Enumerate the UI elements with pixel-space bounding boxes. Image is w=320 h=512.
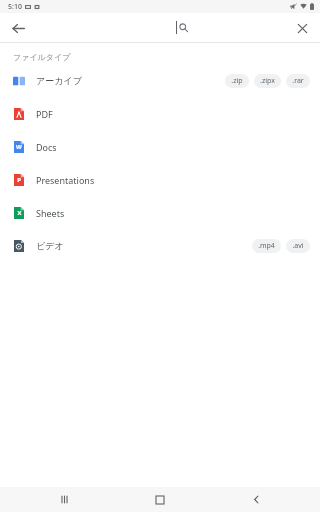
- staticText: P: [17, 176, 21, 184]
- staticText: Presentations: [36, 174, 95, 186]
- staticText: Docs: [36, 141, 57, 153]
- button[interactable]: Back: [242, 487, 270, 512]
- staticText: X: [17, 209, 22, 217]
- button[interactable]: アーカイブ: [0, 64, 320, 97]
- button[interactable]: .zip: [225, 74, 249, 88]
- button[interactable]: .rar: [286, 74, 310, 88]
- button[interactable]: X: [0, 196, 320, 229]
- button[interactable]: Home: [146, 487, 174, 512]
- staticText: .avi: [292, 241, 304, 251]
- staticText: ビデオ: [36, 240, 64, 251]
- staticText: .zipx: [260, 76, 275, 86]
- staticText: ファイルタイプ: [13, 52, 71, 62]
- button[interactable]: Recents: [50, 487, 78, 512]
- button[interactable]: .zipx: [254, 74, 281, 88]
- staticText: .zip: [231, 76, 243, 86]
- staticText: アーカイブ: [36, 75, 82, 86]
- staticText: PDF: [36, 108, 53, 120]
- button[interactable]: Back: [4, 14, 32, 42]
- button[interactable]: P: [0, 163, 320, 196]
- staticText: .rar: [292, 76, 304, 86]
- staticText: Sheets: [36, 207, 65, 219]
- staticText: W: [16, 143, 22, 151]
- staticText: .mp4: [258, 241, 275, 251]
- button[interactable]: .mp4: [252, 239, 281, 253]
- button[interactable]: Clear search: [288, 14, 316, 42]
- staticText: 5:10: [8, 2, 22, 12]
- button[interactable]: PDF: [0, 97, 320, 130]
- button[interactable]: ビデオ: [0, 229, 320, 262]
- button[interactable]: W: [0, 130, 320, 163]
- button[interactable]: .avi: [286, 239, 310, 253]
